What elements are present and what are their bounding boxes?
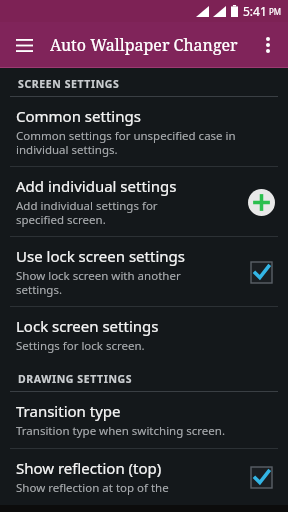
- staticText: PM: [269, 6, 282, 17]
- button[interactable]: Open navigation drawer: [8, 29, 40, 61]
- button[interactable]: Use lock screen settings: [0, 237, 288, 306]
- staticText: Auto Wallpaper Changer: [50, 34, 238, 56]
- staticText: Add individual settings for specified sc…: [16, 198, 158, 227]
- button[interactable]: Add individual settings: [0, 167, 288, 236]
- staticText: Common settings: [16, 106, 141, 126]
- button[interactable]: More options: [252, 29, 284, 61]
- staticText: Show reflection at top of the: [16, 480, 169, 496]
- staticText: Use lock screen settings: [16, 246, 185, 266]
- staticText: 5:41: [243, 3, 267, 19]
- staticText: Transition type: [16, 401, 121, 421]
- button[interactable]: Toggle setting, checked: [244, 255, 278, 289]
- staticText: DRAWING SETTINGS: [18, 372, 133, 386]
- staticText: Common settings for unspecified case in …: [16, 128, 236, 157]
- staticText: Settings for lock screen.: [16, 338, 145, 354]
- staticText: SCREEN SETTINGS: [18, 77, 120, 91]
- staticText: Add individual settings: [16, 176, 177, 196]
- button[interactable]: Add individual settings: [244, 185, 278, 219]
- button[interactable]: Toggle setting, checked: [244, 460, 278, 494]
- staticText: Transition type when switching screen.: [16, 423, 225, 439]
- button[interactable]: Lock screen settings: [0, 307, 288, 363]
- button[interactable]: Transition type: [0, 392, 288, 448]
- staticText: Lock screen settings: [16, 316, 159, 336]
- button[interactable]: Common settings: [0, 97, 288, 166]
- button[interactable]: Show reflection (top): [0, 449, 288, 505]
- staticText: Show lock screen with another settings.: [16, 268, 181, 297]
- staticText: Show reflection (top): [16, 458, 162, 478]
